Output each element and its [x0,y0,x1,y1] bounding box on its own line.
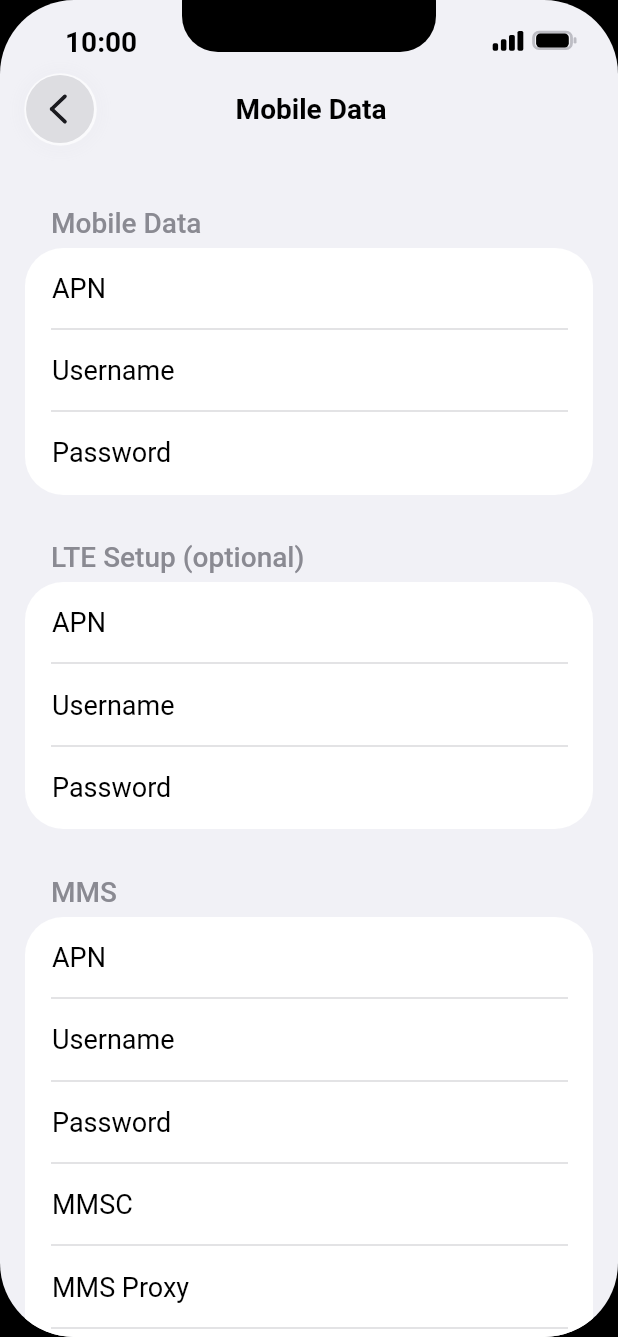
button[interactable]: MMS Port [25,1329,593,1337]
button[interactable]: APN [25,917,593,999]
staticText: MMS Proxy [52,1272,190,1304]
button[interactable]: Password [25,747,593,829]
staticText: Username [52,690,175,722]
staticText: Password [52,437,172,469]
staticText: Mobile Data [2,93,618,126]
button[interactable]: MMS Proxy [25,1247,593,1329]
button[interactable]: MMSC [25,1164,593,1246]
button[interactable]: Username [25,665,593,747]
staticText: Password [52,1107,172,1139]
button[interactable]: Back [26,75,94,143]
staticText: MMSC [52,1189,133,1221]
button[interactable]: APN [25,248,593,330]
staticText: LTE Setup (optional) [51,541,305,574]
button[interactable]: Password [25,1082,593,1164]
button[interactable]: Username [25,999,593,1081]
staticText: MMS [51,876,117,909]
staticText: Mobile Data [51,207,202,240]
staticText: APN [52,273,106,305]
button[interactable]: Password [25,412,593,494]
staticText: Username [52,1024,175,1056]
staticText: Username [52,355,175,387]
staticText: Password [52,772,172,804]
staticText: APN [52,607,106,639]
button[interactable]: APN [25,582,593,664]
staticText: APN [52,942,106,974]
staticText: 10:00 [65,26,138,59]
button[interactable]: Username [25,330,593,412]
